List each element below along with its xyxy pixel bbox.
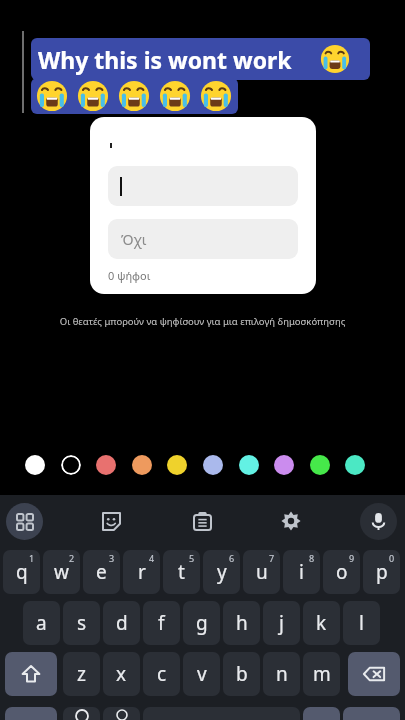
button[interactable]: x xyxy=(103,652,140,696)
button[interactable]: w xyxy=(43,550,80,594)
staticText: y xyxy=(217,559,227,585)
button[interactable]: Colour 2 xyxy=(96,455,116,475)
staticText: n xyxy=(276,661,288,687)
button[interactable]: a xyxy=(23,601,60,645)
staticText: s xyxy=(77,610,87,636)
staticText: a xyxy=(36,610,47,636)
staticText: d xyxy=(116,610,128,636)
staticText: Οι θεατές μπορούν να ψηφίσουν για μια επ… xyxy=(0,315,405,720)
staticText: 1 xyxy=(29,552,35,564)
staticText: 7 xyxy=(269,552,275,564)
staticText: i xyxy=(299,559,304,585)
button[interactable]: Period xyxy=(303,707,340,720)
button[interactable]: Voice input xyxy=(360,503,397,540)
staticText: x xyxy=(116,661,127,687)
staticText: c xyxy=(157,661,167,687)
button[interactable]: Colour 5 xyxy=(203,455,223,475)
button[interactable]: j xyxy=(263,601,300,645)
button[interactable]: Όχι xyxy=(90,117,316,294)
button[interactable]: Emoji xyxy=(63,707,100,720)
staticText: 8 xyxy=(309,552,315,564)
button[interactable]: y xyxy=(203,550,240,594)
button[interactable]: Enter xyxy=(343,707,400,720)
staticText: t xyxy=(178,559,185,585)
staticText: r xyxy=(138,559,146,585)
button[interactable]: Comma xyxy=(103,707,140,720)
staticText: Why this is wont work xyxy=(38,44,292,75)
staticText: w xyxy=(54,559,69,585)
staticText: o xyxy=(336,559,348,585)
button[interactable]: l xyxy=(343,601,380,645)
button[interactable]: h xyxy=(223,601,260,645)
button[interactable]: Keyboard modes xyxy=(6,503,43,540)
button[interactable]: Colour 3 xyxy=(132,455,152,475)
button[interactable]: t xyxy=(163,550,200,594)
staticText: 3 xyxy=(109,552,115,564)
button[interactable]: z xyxy=(63,652,100,696)
button[interactable]: Colour 0 xyxy=(25,455,45,475)
button[interactable]: Colour 4 xyxy=(167,455,187,475)
staticText: 0 ψήφοι xyxy=(108,268,151,283)
staticText: l xyxy=(359,610,364,636)
staticText: 0 xyxy=(389,552,395,564)
button[interactable]: Backspace xyxy=(348,652,400,696)
button[interactable]: q xyxy=(3,550,40,594)
button[interactable]: o xyxy=(323,550,360,594)
button[interactable]: i xyxy=(283,550,320,594)
staticText: h xyxy=(236,610,248,636)
staticText: k xyxy=(316,610,327,636)
staticText: q xyxy=(16,559,28,585)
button[interactable]: Colour 7 xyxy=(274,455,294,475)
staticText: 2 xyxy=(69,552,75,564)
button[interactable]: Όχι xyxy=(108,219,298,259)
button[interactable]: Colour 8 xyxy=(310,455,330,475)
button[interactable] xyxy=(108,166,298,206)
button[interactable]: k xyxy=(303,601,340,645)
staticText: 9 xyxy=(349,552,355,564)
button[interactable] xyxy=(31,38,370,80)
staticText: j xyxy=(279,610,284,636)
staticText: z xyxy=(77,661,86,687)
button[interactable]: d xyxy=(103,601,140,645)
staticText: f xyxy=(158,610,165,636)
button[interactable]: m xyxy=(303,652,340,696)
button[interactable]: g xyxy=(183,601,220,645)
staticText: b xyxy=(236,661,248,687)
staticText: m xyxy=(313,661,331,687)
staticText: Όχι xyxy=(121,230,147,249)
button[interactable]: c xyxy=(143,652,180,696)
staticText: g xyxy=(196,610,208,636)
staticText: e xyxy=(96,559,107,585)
button[interactable]: s xyxy=(63,601,100,645)
button[interactable]: Settings xyxy=(277,507,305,535)
button[interactable]: Symbols xyxy=(5,707,57,720)
button[interactable]: Stickers xyxy=(98,508,124,534)
staticText: p xyxy=(376,559,388,585)
button[interactable]: Clipboard xyxy=(188,507,216,535)
button[interactable]: r xyxy=(123,550,160,594)
button[interactable]: Colour 9 xyxy=(345,455,365,475)
button[interactable]: f xyxy=(143,601,180,645)
button[interactable]: b xyxy=(223,652,260,696)
staticText: v xyxy=(197,661,207,687)
button[interactable]: p xyxy=(363,550,400,594)
button[interactable]: Colour 6 xyxy=(239,455,259,475)
staticText: 5 xyxy=(189,552,195,564)
button[interactable]: v xyxy=(183,652,220,696)
button[interactable]: n xyxy=(263,652,300,696)
button[interactable]: e xyxy=(83,550,120,594)
staticText: 6 xyxy=(229,552,235,564)
button[interactable]: Shift xyxy=(5,652,57,696)
button[interactable]: u xyxy=(243,550,280,594)
button[interactable]: Colour 1 xyxy=(61,455,81,475)
staticText: 4 xyxy=(149,552,155,564)
staticText: u xyxy=(256,559,268,585)
